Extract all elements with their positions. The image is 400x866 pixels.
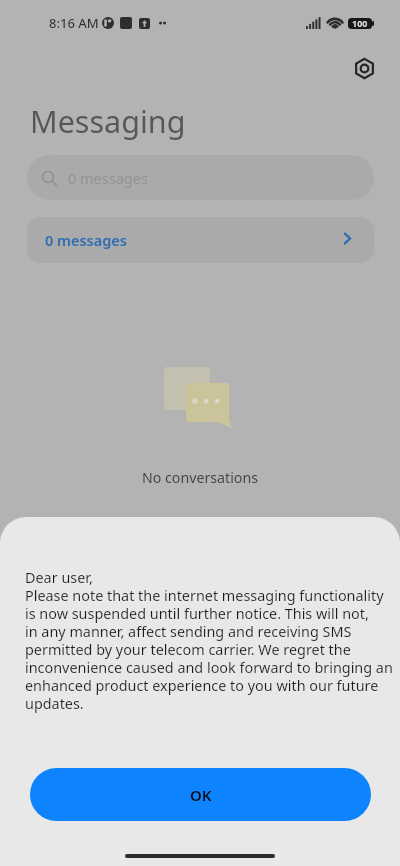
staticText: No conversations	[142, 468, 258, 487]
staticText: 100	[352, 17, 368, 29]
button[interactable]: 0 messages	[27, 155, 374, 200]
staticText: Messaging	[30, 100, 186, 142]
staticText: OK	[190, 785, 212, 805]
button[interactable]: Settings	[346, 50, 382, 86]
staticText: 8:16 AM	[49, 14, 99, 32]
staticText: Dear user, Please note that the internet…	[25, 568, 393, 714]
button[interactable]: 0 messages	[27, 217, 374, 263]
staticText: 0 messages	[45, 230, 127, 250]
button[interactable]: OK	[30, 768, 371, 821]
staticText: 0 messages	[68, 168, 148, 188]
